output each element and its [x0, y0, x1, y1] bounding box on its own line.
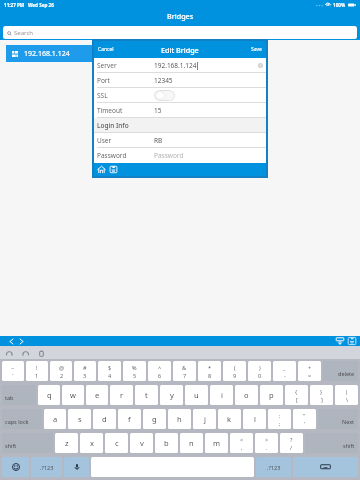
button[interactable]: i — [210, 385, 233, 405]
button[interactable]: t — [135, 385, 158, 405]
button[interactable]: { — [285, 385, 308, 405]
staticText: a — [53, 414, 58, 424]
button[interactable]: ) — [248, 361, 271, 381]
button[interactable]: d — [93, 409, 116, 429]
staticText: 1 — [35, 372, 39, 379]
button[interactable]: @ — [50, 361, 72, 381]
button[interactable]: & — [173, 361, 196, 381]
button[interactable]: " — [293, 409, 316, 429]
button[interactable]: > — [255, 433, 278, 453]
button[interactable]: v — [130, 433, 153, 453]
button[interactable]: % — [123, 361, 146, 381]
button[interactable]: k — [218, 409, 241, 429]
button[interactable]: q — [38, 385, 60, 405]
button[interactable]: h — [168, 409, 191, 429]
button[interactable]: f — [118, 409, 141, 429]
button[interactable]: shift — [305, 433, 358, 453]
button[interactable]: Port — [94, 73, 266, 88]
button[interactable]: l — [243, 409, 266, 429]
button[interactable]: Emoji — [2, 457, 29, 477]
staticText: .?123 — [267, 464, 281, 471]
button[interactable]: caps lock — [2, 409, 42, 429]
button[interactable]: Next — [318, 409, 358, 429]
button[interactable]: b — [155, 433, 178, 453]
staticText: # — [83, 364, 87, 371]
button[interactable]: x — [80, 433, 103, 453]
button[interactable]: Save — [109, 165, 118, 174]
staticText: : — [279, 412, 281, 419]
button[interactable]: Dictation — [64, 457, 89, 477]
button[interactable]: r — [110, 385, 133, 405]
button[interactable]: c — [105, 433, 128, 453]
button[interactable]: Timeout — [94, 103, 266, 118]
staticText: / — [290, 444, 293, 451]
staticText: l — [254, 414, 256, 424]
button[interactable]: n — [180, 433, 203, 453]
button[interactable]: * — [198, 361, 221, 381]
button[interactable]: Previous field — [7, 337, 16, 346]
button[interactable]: ! — [26, 361, 48, 381]
staticText: _ — [283, 364, 286, 371]
button[interactable]: Server — [94, 58, 266, 73]
staticText: 4 — [108, 372, 112, 379]
button[interactable]: Password — [94, 148, 266, 163]
button[interactable]: y — [160, 385, 183, 405]
button[interactable]: Home — [97, 165, 106, 174]
staticText: 5 — [133, 372, 137, 379]
button[interactable]: Hide keyboard — [335, 336, 345, 346]
staticText: v — [140, 438, 144, 448]
button[interactable]: Next field — [17, 337, 26, 346]
button[interactable]: Redo — [21, 349, 30, 358]
button[interactable]: w — [62, 385, 84, 405]
button[interactable]: delete — [323, 361, 358, 381]
button[interactable]: + — [298, 361, 321, 381]
button[interactable]: Paste — [37, 349, 46, 358]
staticText: z — [65, 438, 69, 448]
button[interactable]: z — [55, 433, 78, 453]
button[interactable]: e — [86, 385, 108, 405]
button[interactable]: Hide keyboard — [293, 457, 358, 477]
button[interactable]: s — [68, 409, 91, 429]
button[interactable]: SSL — [94, 88, 266, 103]
button[interactable]: .?123 — [256, 457, 291, 477]
staticText: c — [115, 438, 119, 448]
button[interactable]: User — [94, 133, 266, 148]
staticText: User — [97, 136, 112, 145]
button[interactable]: _ — [273, 361, 296, 381]
button[interactable]: Cancel — [98, 46, 114, 53]
button[interactable]: ^ — [148, 361, 171, 381]
staticText: , — [241, 444, 243, 451]
button[interactable]: } — [310, 385, 333, 405]
staticText: f — [128, 414, 131, 424]
staticText: shift — [5, 442, 17, 449]
button[interactable]: ( — [223, 361, 246, 381]
button[interactable]: Undo — [5, 349, 14, 358]
button[interactable]: Save — [347, 336, 357, 346]
staticText: | — [345, 388, 349, 395]
button[interactable]: : — [268, 409, 291, 429]
button[interactable]: # — [74, 361, 96, 381]
button[interactable]: j — [193, 409, 216, 429]
staticText: y — [170, 390, 174, 400]
button[interactable]: .?123 — [31, 457, 62, 477]
button[interactable]: Save — [251, 46, 262, 53]
button[interactable]: < — [230, 433, 253, 453]
button[interactable]: m — [205, 433, 228, 453]
button[interactable]: u — [185, 385, 208, 405]
button[interactable]: Search — [3, 26, 357, 39]
button[interactable]: ? — [280, 433, 303, 453]
button[interactable]: p — [260, 385, 283, 405]
button[interactable]: g — [143, 409, 166, 429]
button[interactable]: o — [235, 385, 258, 405]
button[interactable]: ~ — [2, 361, 24, 381]
button[interactable]: tab — [2, 385, 36, 405]
button[interactable]: 192.168.1.124 — [6, 45, 93, 62]
button[interactable]: a — [44, 409, 66, 429]
staticText: " — [303, 412, 306, 419]
button[interactable]: $ — [98, 361, 121, 381]
staticText: g — [152, 414, 157, 424]
staticText: = — [308, 372, 312, 379]
button[interactable]: | — [335, 385, 358, 405]
button[interactable]: shift — [2, 433, 53, 453]
